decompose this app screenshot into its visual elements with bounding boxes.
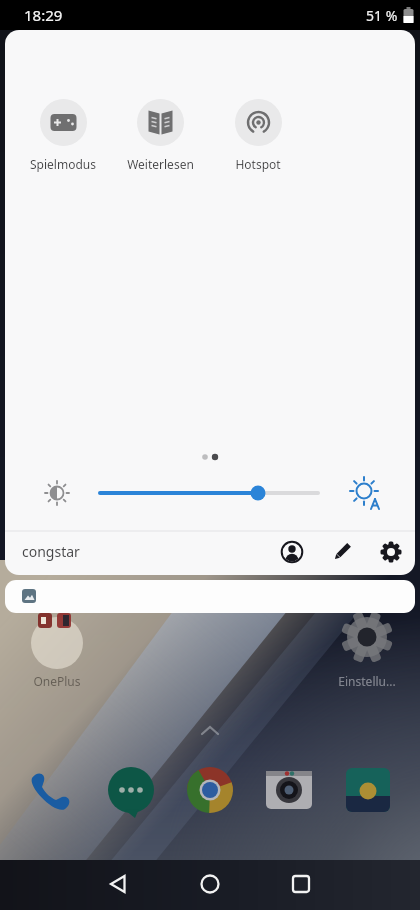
button[interactable] <box>90 478 330 508</box>
staticText: OnePlus <box>33 673 81 689</box>
button[interactable] <box>5 580 415 613</box>
button[interactable] <box>265 766 313 814</box>
button[interactable] <box>280 860 420 910</box>
staticText: Spielmodus <box>30 156 96 172</box>
staticText: Einstellu... <box>338 673 396 689</box>
button[interactable]: Hotspot <box>213 99 303 172</box>
button[interactable] <box>28 766 76 814</box>
button[interactable] <box>0 860 140 910</box>
staticText: 18:29 <box>24 5 63 25</box>
staticText: Hotspot <box>235 156 281 172</box>
button[interactable]: Weiterlesen <box>115 99 205 172</box>
staticText: Weiterlesen <box>127 156 194 172</box>
button[interactable]: Spielmodus <box>18 99 108 172</box>
button[interactable] <box>140 860 280 910</box>
staticText: congstar <box>22 542 80 561</box>
button[interactable] <box>33 617 81 665</box>
button[interactable] <box>325 535 359 569</box>
staticText: 51 % <box>366 6 398 25</box>
button[interactable] <box>343 613 391 661</box>
button[interactable] <box>107 766 155 814</box>
button[interactable] <box>344 766 392 814</box>
button[interactable] <box>275 535 309 569</box>
button[interactable] <box>374 535 408 569</box>
button[interactable] <box>186 766 234 814</box>
